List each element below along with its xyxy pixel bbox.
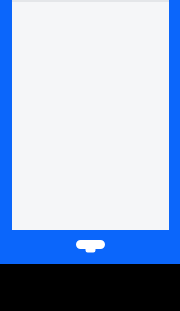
button[interactable]: Home indicator [0, 0, 34, 16]
